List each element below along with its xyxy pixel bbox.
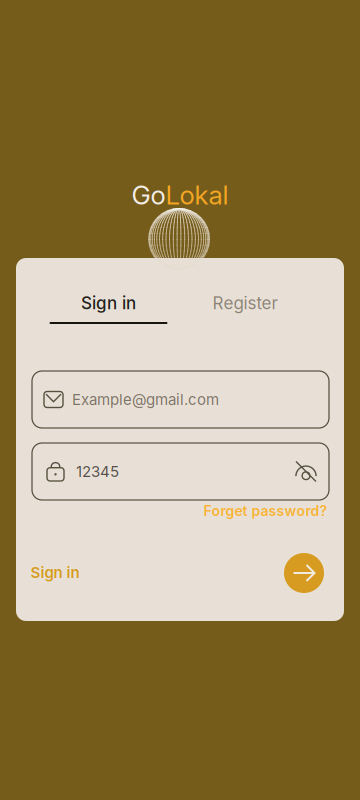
staticText: Register [212, 293, 277, 313]
staticText: Go [131, 179, 165, 211]
staticText: 12345 [76, 462, 119, 480]
button[interactable]: Sign in [33, 286, 183, 320]
staticText: Sign in [30, 563, 79, 581]
button[interactable]: Show password [295, 460, 317, 482]
staticText: Forget password? [203, 502, 327, 519]
button[interactable]: Sign in [30, 561, 79, 583]
staticText: Sign in [81, 293, 136, 313]
staticText: Lokal [165, 179, 228, 211]
button[interactable]: Continue [284, 553, 324, 593]
staticText: Example@gmail.com [72, 390, 219, 408]
button[interactable]: Forget password? [203, 501, 327, 521]
button[interactable]: Register [170, 286, 320, 320]
